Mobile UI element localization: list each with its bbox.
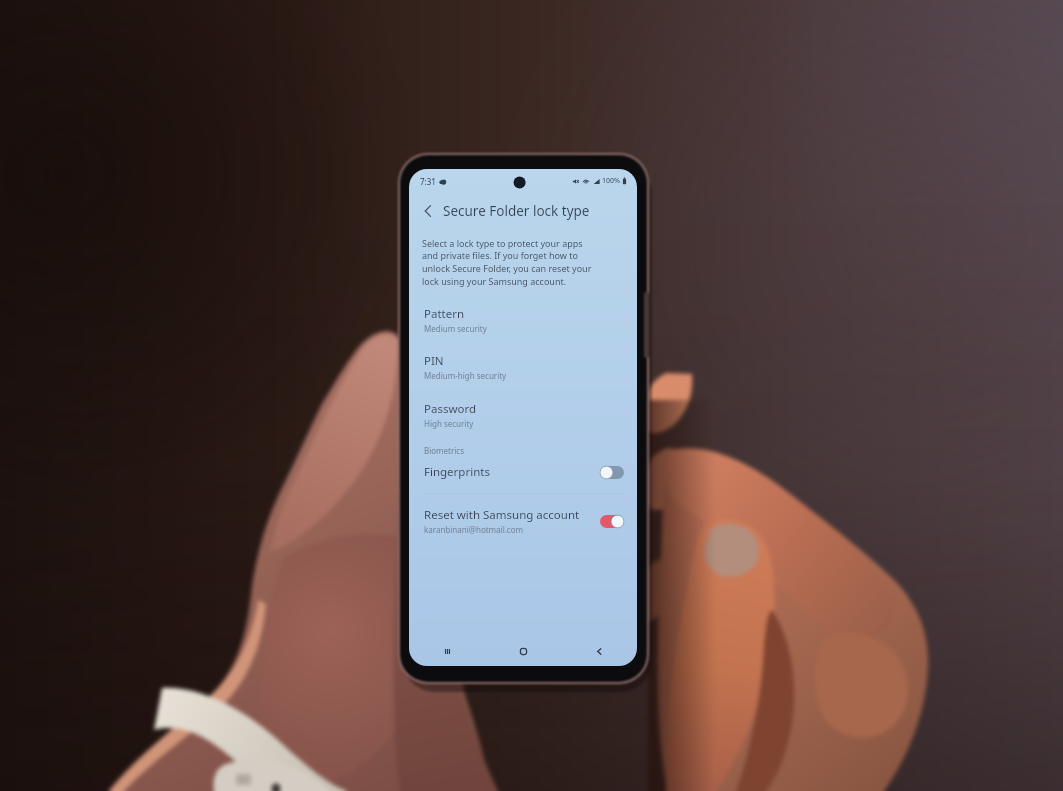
staticText: Reset with Samsung account xyxy=(424,507,580,523)
button[interactable]: Navigate up xyxy=(417,200,439,222)
staticText: Medium-high security xyxy=(424,370,507,381)
staticText: Secure Folder lock type xyxy=(443,202,590,220)
button[interactable]: Back xyxy=(561,636,637,666)
staticText: Medium security xyxy=(424,323,487,334)
button[interactable]: Recent apps xyxy=(409,636,485,666)
staticText: Fingerprints xyxy=(424,464,490,480)
staticText: 7:31 xyxy=(420,176,436,187)
staticText: Pattern xyxy=(424,306,465,322)
button[interactable]: Pattern xyxy=(409,304,637,336)
button[interactable]: Password xyxy=(409,399,637,431)
staticText: 100% xyxy=(602,176,620,186)
staticText: PIN xyxy=(424,353,444,369)
staticText: Biometrics xyxy=(424,445,465,456)
button[interactable]: Fingerprints xyxy=(409,462,637,482)
staticText: Select a lock type to protect your apps … xyxy=(422,237,592,288)
staticText: karanbinani@hotmail.com xyxy=(424,524,524,535)
button[interactable]: Reset with Samsung account xyxy=(409,505,637,537)
button[interactable]: PIN xyxy=(409,351,637,383)
staticText: High security xyxy=(424,418,474,429)
button[interactable]: Home xyxy=(485,636,561,666)
staticText: Password xyxy=(424,401,477,417)
